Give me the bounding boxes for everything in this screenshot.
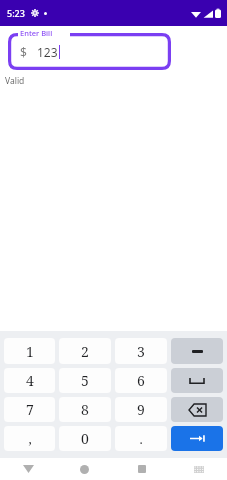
staticText: . [139,430,143,448]
staticText: Enter Bill [20,28,53,38]
staticText: 1 [26,342,34,361]
button[interactable]: . [115,426,167,451]
staticText: 123 [37,44,58,60]
button[interactable]: Backspace [171,397,223,422]
button[interactable]: Back [0,458,56,480]
staticText: 6 [137,371,145,390]
button[interactable]: Home [56,458,113,480]
staticText: , [28,430,32,448]
button[interactable]: 0 [59,426,111,451]
staticText: 3 [137,342,145,361]
staticText: $ [20,44,27,60]
button[interactable]: Minus [171,338,223,364]
button[interactable]: 2 [59,338,111,364]
staticText: 9 [137,400,145,419]
button[interactable]: 9 [115,397,167,422]
button[interactable]: , [4,426,55,451]
button[interactable]: 7 [4,397,55,422]
staticText: 5:23 [7,7,25,19]
button[interactable]: Switch keyboard [170,458,227,480]
button[interactable]: 1 [4,338,55,364]
staticText: 8 [81,400,89,419]
staticText: 2 [81,342,89,361]
button[interactable]: Space [171,368,223,393]
button[interactable]: $ [8,33,171,70]
button[interactable]: 3 [115,338,167,364]
staticText: 7 [26,400,34,419]
staticText: 5 [81,371,89,390]
button[interactable]: 4 [4,368,55,393]
button[interactable]: Recent apps [113,458,170,480]
staticText: 0 [81,429,89,448]
staticText: Valid [5,75,25,87]
staticText: 4 [26,371,34,390]
button[interactable]: 5 [59,368,111,393]
button[interactable]: 6 [115,368,167,393]
button[interactable]: Enter [171,426,223,451]
button[interactable]: 8 [59,397,111,422]
